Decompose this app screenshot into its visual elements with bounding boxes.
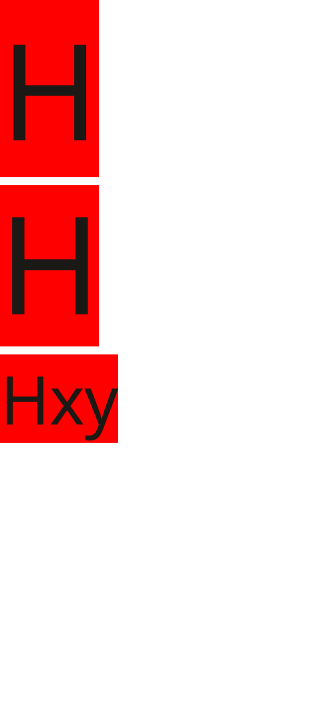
staticText: H — [0, 185, 99, 346]
staticText: H — [0, 0, 99, 177]
staticText: Hxy — [0, 354, 118, 443]
